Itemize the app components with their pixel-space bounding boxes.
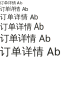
staticText: 订单详情 Ab	[0, 0, 22, 5]
staticText: 订单详情 Ab	[0, 12, 38, 21]
staticText: 订单详情 Ab	[0, 44, 61, 58]
staticText: 订单详情 Ab	[0, 21, 44, 32]
staticText: 订单详情 Ab	[0, 5, 28, 12]
staticText: 订单详情 Ab	[0, 32, 51, 44]
